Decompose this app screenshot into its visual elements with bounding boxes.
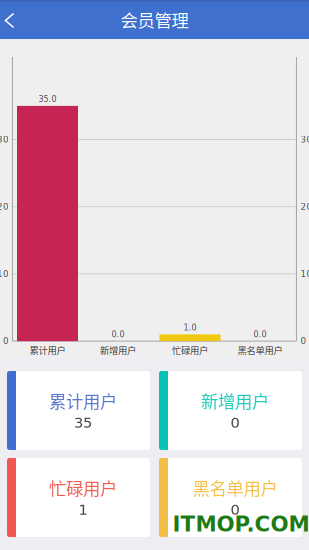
staticText: 10 <box>0 269 9 279</box>
staticText: 黑名单用户 <box>192 475 277 500</box>
staticText: 30 <box>0 134 9 145</box>
staticText: 新增用户 <box>201 388 269 413</box>
staticText: 0 <box>3 336 9 346</box>
staticText: 30 <box>300 134 309 145</box>
staticText: 10 <box>300 269 309 279</box>
staticText: 0 <box>300 336 306 346</box>
staticText: 忙碌用户 <box>49 475 117 500</box>
staticText: 0.0 <box>111 330 124 339</box>
staticText: 新增用户 <box>100 343 136 357</box>
staticText: 0 <box>230 501 239 518</box>
staticText: 黑名单用户 <box>237 343 282 357</box>
button[interactable]: 新增用户 <box>159 371 302 450</box>
button[interactable]: 黑名单用户 <box>159 458 302 537</box>
staticText: ITMOP.COM <box>172 512 309 536</box>
staticText: 忙碌用户 <box>172 343 208 357</box>
staticText: 0.0 <box>253 330 266 339</box>
staticText: 1 <box>78 501 87 518</box>
staticText: 35.0 <box>38 95 56 104</box>
staticText: 20 <box>300 202 309 212</box>
staticText: 累计用户 <box>49 388 117 413</box>
staticText: 0 <box>230 414 239 431</box>
button[interactable]: 忙碌用户 <box>7 458 150 537</box>
staticText: 20 <box>0 202 9 212</box>
staticText: 1.0 <box>183 323 196 332</box>
staticText: 会员管理 <box>120 7 188 32</box>
staticText: 35 <box>74 414 92 431</box>
staticText: 累计用户 <box>29 343 65 357</box>
button[interactable]: 累计用户 <box>7 371 150 450</box>
button[interactable]: Back <box>0 2 34 37</box>
